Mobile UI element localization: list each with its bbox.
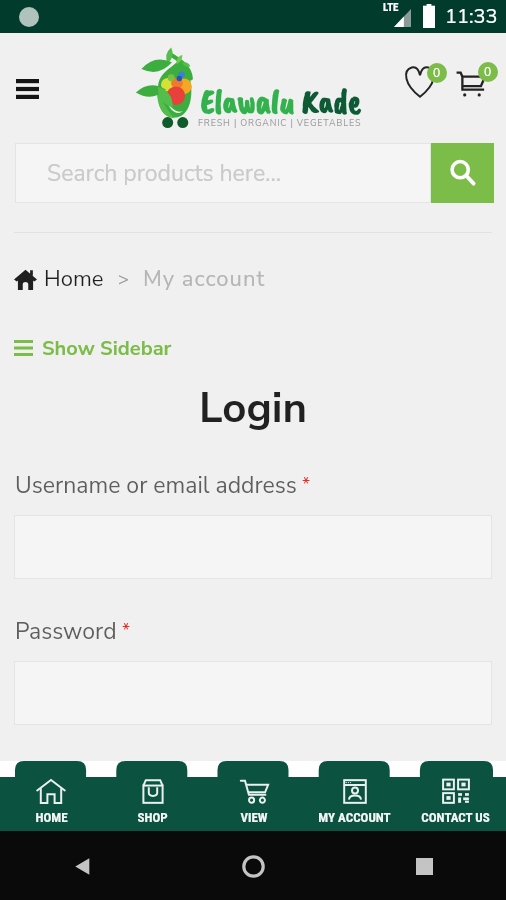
button[interactable]: CONTACT US xyxy=(405,761,506,831)
button[interactable]: Show Sidebar xyxy=(14,334,172,362)
button[interactable] xyxy=(14,661,492,725)
staticText: Password xyxy=(15,616,117,647)
staticText: Kade xyxy=(301,80,361,123)
staticText: SHOP xyxy=(137,810,168,825)
button[interactable]: MY ACCOUNT xyxy=(304,761,405,831)
button[interactable]: Back xyxy=(60,844,104,888)
button[interactable]: VIEW xyxy=(203,761,304,831)
staticText: VIEW xyxy=(240,810,268,825)
staticText: > xyxy=(118,267,129,292)
staticText: CONTACT US xyxy=(421,810,490,825)
button[interactable]: Recents xyxy=(402,844,446,888)
button[interactable]: Search xyxy=(431,143,494,203)
staticText: Search products here... xyxy=(47,158,281,189)
staticText: LTE xyxy=(383,1,399,14)
button[interactable]: Cart xyxy=(452,60,500,102)
button[interactable]: Home xyxy=(14,263,266,295)
staticText: HOME xyxy=(35,810,68,825)
staticText: * xyxy=(122,618,131,643)
button[interactable]: Wishlist xyxy=(400,60,448,102)
button[interactable]: SHOP xyxy=(102,761,203,831)
staticText: * xyxy=(302,472,311,497)
staticText: 0 xyxy=(484,64,492,80)
button[interactable] xyxy=(14,515,492,579)
button[interactable]: Home xyxy=(231,844,275,888)
staticText: Username or email address xyxy=(15,470,297,501)
staticText: MY ACCOUNT xyxy=(318,810,391,825)
staticText: Show Sidebar xyxy=(42,335,172,362)
staticText: 11:33 xyxy=(445,3,498,30)
staticText: My account xyxy=(143,264,266,294)
button[interactable]: Menu xyxy=(8,70,46,108)
staticText: FRESH | ORGANIC | VEGETABLES xyxy=(198,117,362,129)
staticText: Elawalu xyxy=(200,80,295,123)
button[interactable]: Search products here... xyxy=(15,143,431,203)
staticText: 0 xyxy=(433,65,441,81)
button[interactable]: HOME xyxy=(0,761,102,831)
staticText: Login xyxy=(0,380,506,437)
staticText: Home xyxy=(44,264,104,294)
